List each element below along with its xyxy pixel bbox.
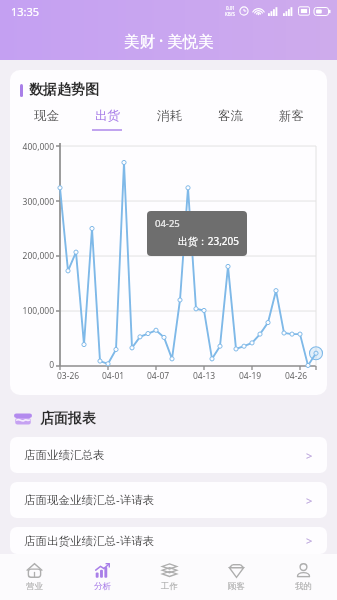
- staticText: 04-25: [155, 217, 180, 230]
- staticText: 03-26: [57, 370, 80, 382]
- staticText: 出货: [95, 108, 120, 124]
- button[interactable]: 我的: [270, 554, 337, 600]
- staticText: 04-13: [193, 370, 216, 382]
- button[interactable]: 客流: [210, 108, 250, 131]
- button[interactable]: 消耗: [149, 108, 189, 131]
- staticText: 店面业绩汇总表: [24, 448, 306, 462]
- staticText: 04-07: [147, 370, 170, 382]
- staticText: 顾客: [228, 581, 245, 592]
- staticText: KB/S: [225, 11, 235, 17]
- staticText: 数据趋势图: [29, 81, 99, 99]
- staticText: 新客: [279, 108, 304, 124]
- staticText: 0.01: [226, 5, 235, 11]
- staticText: 200,000: [10, 250, 54, 262]
- staticText: 现金: [34, 108, 59, 124]
- staticText: 店面出货业绩汇总-详请表: [24, 533, 306, 549]
- staticText: 客流: [218, 108, 243, 124]
- staticText: 400,000: [10, 141, 54, 153]
- button[interactable]: 新客: [271, 108, 311, 131]
- staticText: 04-01: [102, 370, 125, 382]
- staticText: >: [306, 493, 313, 508]
- staticText: 营业: [26, 581, 43, 592]
- button[interactable]: 店面现金业绩汇总-详请表: [10, 482, 327, 518]
- staticText: 300,000: [10, 196, 54, 208]
- staticText: 我的: [295, 581, 312, 592]
- button[interactable]: 店面业绩汇总表: [10, 437, 327, 473]
- staticText: 100,000: [10, 305, 54, 317]
- staticText: 分析: [94, 581, 111, 592]
- staticText: 消耗: [157, 108, 182, 124]
- staticText: 04-19: [239, 370, 262, 382]
- staticText: >: [306, 533, 313, 548]
- button[interactable]: 顾客: [203, 554, 270, 600]
- button[interactable]: 营业: [0, 554, 68, 600]
- staticText: 出货：23,205: [155, 234, 239, 248]
- staticText: 工作: [161, 581, 178, 592]
- staticText: >: [306, 448, 313, 463]
- button[interactable]: 工作: [136, 554, 203, 600]
- button[interactable]: 分析: [68, 554, 136, 600]
- staticText: 店面现金业绩汇总-详请表: [24, 492, 306, 508]
- button[interactable]: 现金: [26, 108, 66, 131]
- staticText: 0: [10, 359, 54, 371]
- staticText: 13:35: [11, 4, 40, 19]
- staticText: 04-26: [285, 370, 308, 382]
- button[interactable]: 店面出货业绩汇总-详请表: [10, 527, 327, 554]
- staticText: 店面报表: [40, 410, 96, 428]
- staticText: 美财 · 美悦美: [124, 30, 214, 51]
- button[interactable]: 出货: [87, 108, 127, 131]
